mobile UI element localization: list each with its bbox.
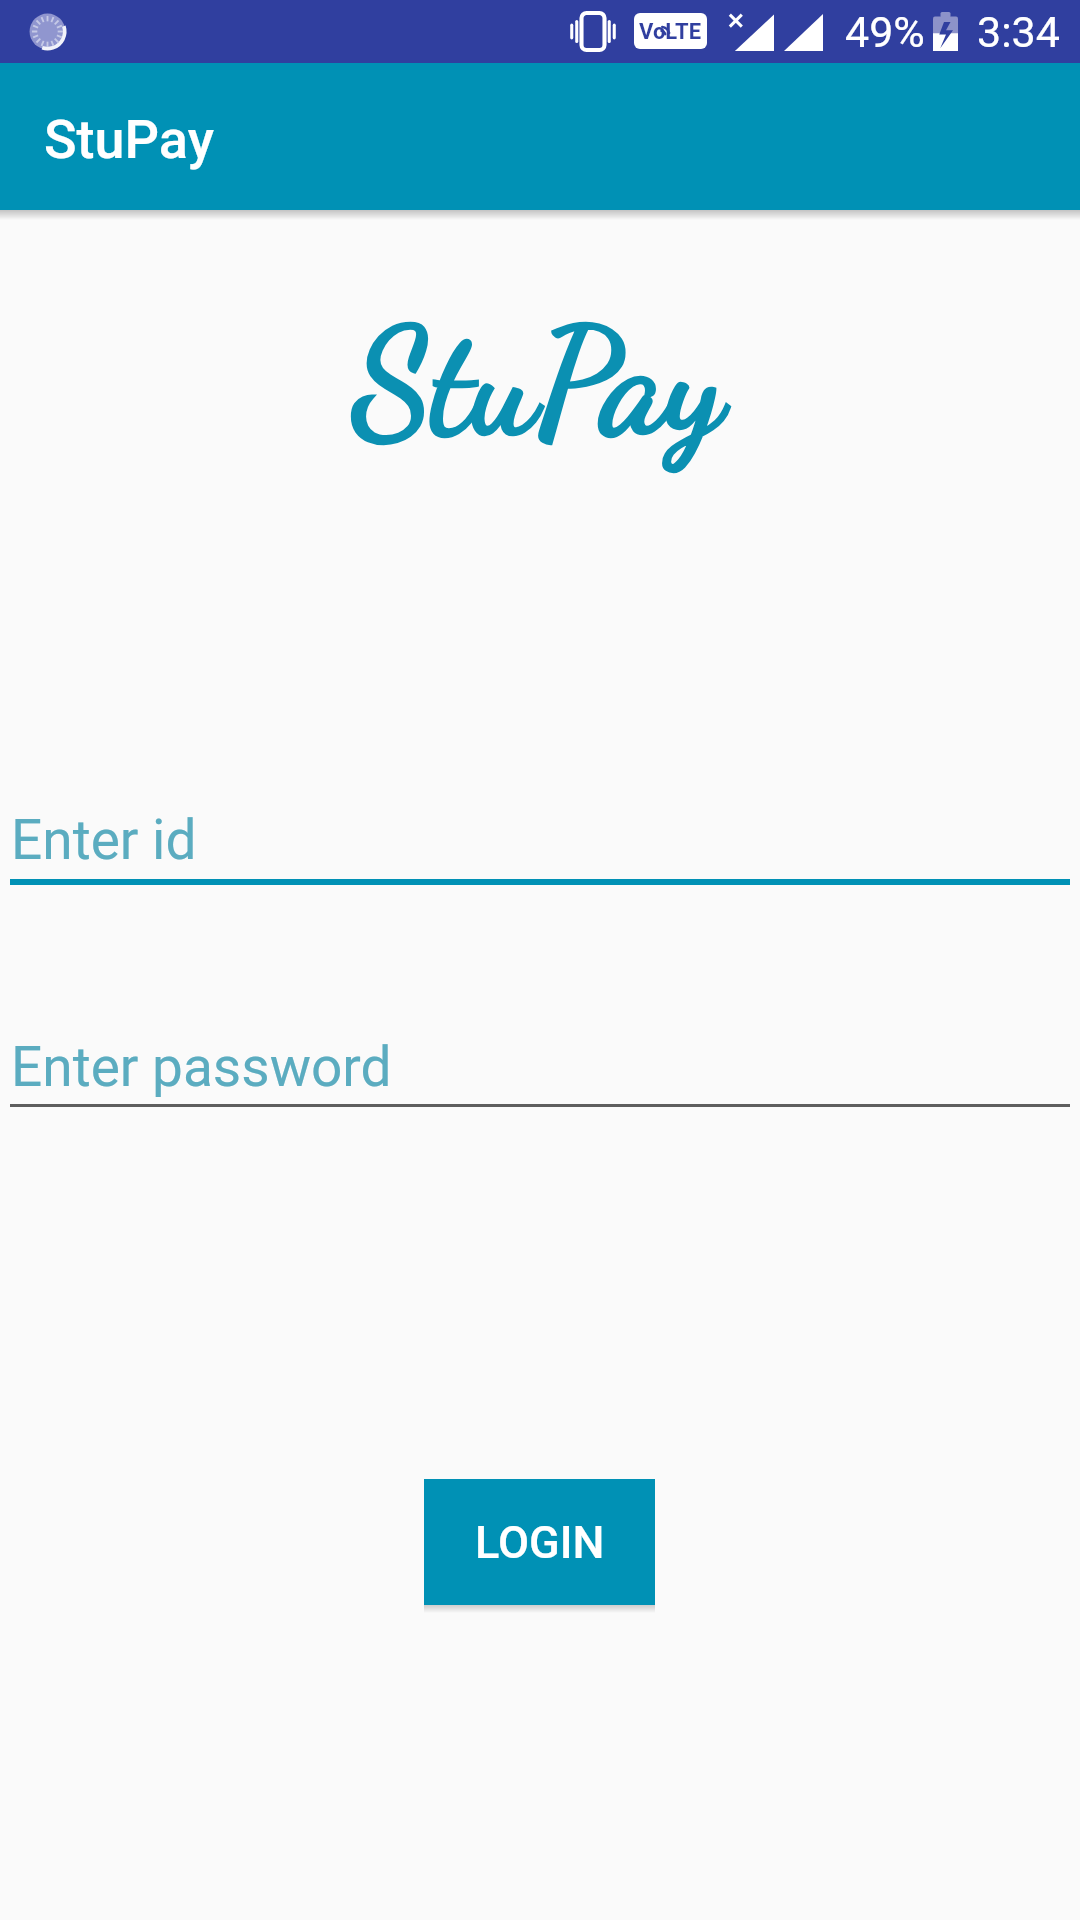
other: Vibrate mode — [568, 11, 618, 52]
staticText: Enter id — [11, 808, 197, 872]
staticText: LOGIN — [475, 1516, 605, 1569]
button[interactable]: LOGIN — [424, 1479, 655, 1605]
other: Sync in progress — [29, 13, 66, 50]
staticText: StuPay — [44, 108, 214, 171]
other: Battery 49 percent, charging — [933, 12, 958, 51]
button[interactable]: Enter password — [0, 1005, 1080, 1107]
staticText: Enter password — [11, 1035, 392, 1099]
staticText: 49% — [845, 7, 925, 57]
staticText: 3:34 — [977, 7, 1060, 57]
staticText: StuPay — [354, 296, 725, 471]
button[interactable]: Enter id — [0, 778, 1080, 885]
staticText: VoLTE — [639, 19, 702, 45]
other: VoLTE enabled — [634, 13, 707, 49]
other: Mobile signal, no data — [728, 11, 774, 51]
other: Mobile signal — [784, 14, 823, 51]
